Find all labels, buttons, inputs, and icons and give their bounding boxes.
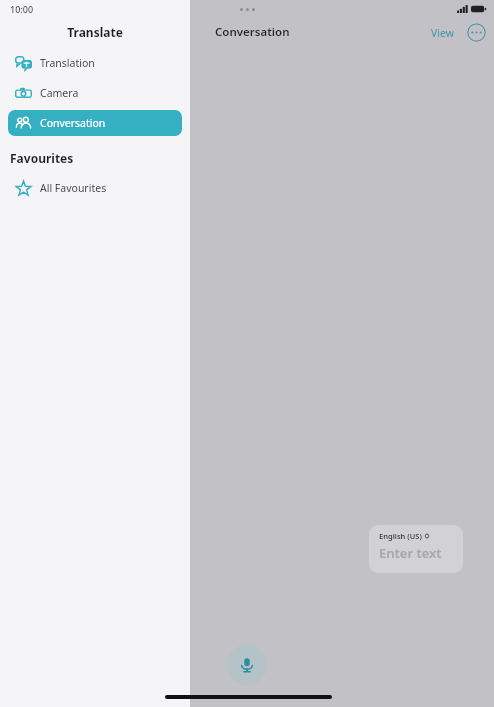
staticText: English (US) [379,531,422,541]
staticText: 10:00 [10,3,34,15]
staticText: Translation [40,56,95,70]
staticText: Conversation [215,24,290,40]
button[interactable]: English (US) [369,525,463,573]
staticText: Conversation [40,116,106,130]
button[interactable]: View [427,24,458,42]
staticText: Camera [40,86,79,100]
button[interactable]: All Favourites [8,175,182,201]
staticText: Translate [67,24,123,40]
button[interactable]: Camera [8,80,182,106]
staticText: View [431,26,454,40]
staticText: All Favourites [40,181,107,195]
button[interactable]: More options [467,23,486,42]
button[interactable]: Conversation [8,110,182,136]
button[interactable]: Record speech [227,645,267,685]
staticText: Enter text [379,544,442,562]
staticText: Favourites [10,150,74,166]
button[interactable]: Translation [8,50,182,76]
